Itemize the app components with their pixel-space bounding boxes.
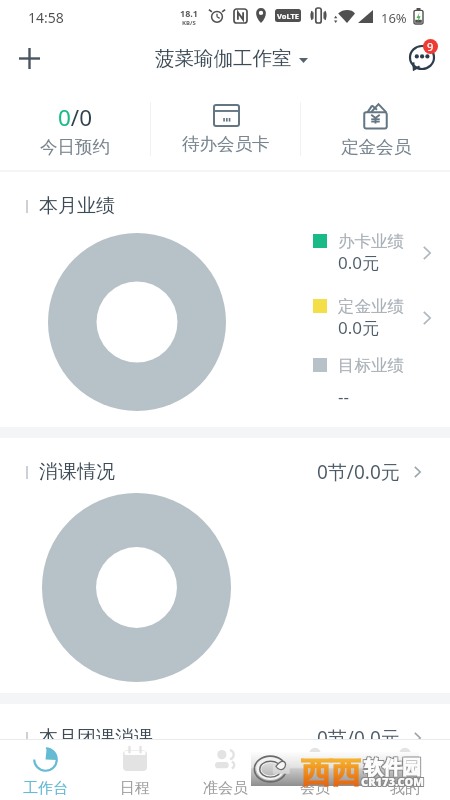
- button[interactable]: 工作台: [0, 740, 90, 800]
- staticText: 本月业绩: [39, 194, 115, 218]
- button[interactable]: 准会员: [180, 740, 270, 800]
- staticText: 软件园: [364, 756, 421, 780]
- staticText: 办卡业绩: [338, 231, 404, 252]
- button[interactable]: 待办会员卡: [151, 88, 300, 170]
- staticText: 待办会员卡: [182, 133, 270, 155]
- staticText: CR173.COM: [360, 773, 423, 788]
- staticText: 日程: [120, 779, 150, 798]
- button[interactable]: 菠菜瑜伽工作室: [149, 40, 314, 77]
- staticText: 会员: [300, 779, 330, 798]
- staticText: VoLTE: [277, 11, 299, 21]
- staticText: CR173.COM: [360, 775, 423, 790]
- button[interactable]: 会员: [270, 740, 360, 800]
- staticText: KB/S: [182, 19, 196, 27]
- button[interactable]: 0/0: [0, 88, 150, 170]
- staticText: 软件园: [365, 755, 422, 779]
- staticText: 软件园: [363, 755, 420, 779]
- button[interactable]: 消课情况: [26, 459, 421, 485]
- button[interactable]: 目标业绩: [305, 352, 437, 398]
- staticText: 0节/0.0元: [317, 459, 400, 485]
- staticText: 消课情况: [39, 460, 115, 484]
- button[interactable]: Add: [7, 36, 51, 80]
- button[interactable]: Messages: [394, 31, 450, 85]
- staticText: 菠菜瑜伽工作室: [155, 46, 292, 71]
- staticText: 0.0元: [338, 316, 380, 339]
- staticText: --: [338, 385, 349, 408]
- staticText: CR173.COM: [361, 774, 424, 789]
- button[interactable]: 本月团课消课: [26, 725, 421, 751]
- staticText: 14:58: [28, 8, 64, 27]
- staticText: 0/0: [58, 102, 93, 133]
- staticText: 9: [427, 39, 434, 54]
- staticText: 工作台: [23, 779, 68, 798]
- staticText: 准会员: [203, 779, 248, 798]
- staticText: CR173.COM: [362, 773, 425, 788]
- button[interactable]: 日程: [90, 740, 180, 800]
- staticText: 软件园: [363, 757, 420, 781]
- staticText: 软件园: [365, 757, 422, 781]
- staticText: 今日预约: [40, 136, 110, 158]
- button[interactable]: 我的: [360, 740, 450, 800]
- staticText: 18.1: [180, 7, 198, 19]
- staticText: 定金会员: [341, 136, 411, 158]
- staticText: CR173.COM: [362, 775, 425, 790]
- staticText: 西西: [301, 754, 361, 788]
- staticText: 0节/0.0元: [317, 725, 400, 751]
- staticText: 本月团课消课: [39, 726, 153, 750]
- staticText: 我的: [390, 779, 420, 798]
- button[interactable]: 定金业绩: [305, 293, 437, 339]
- staticText: 16%: [381, 9, 407, 27]
- staticText: 定金业绩: [338, 296, 404, 317]
- button[interactable]: 办卡业绩: [305, 228, 437, 274]
- button[interactable]: 定金会员: [301, 88, 450, 170]
- staticText: 0.0元: [338, 251, 380, 274]
- staticText: 目标业绩: [338, 355, 404, 376]
